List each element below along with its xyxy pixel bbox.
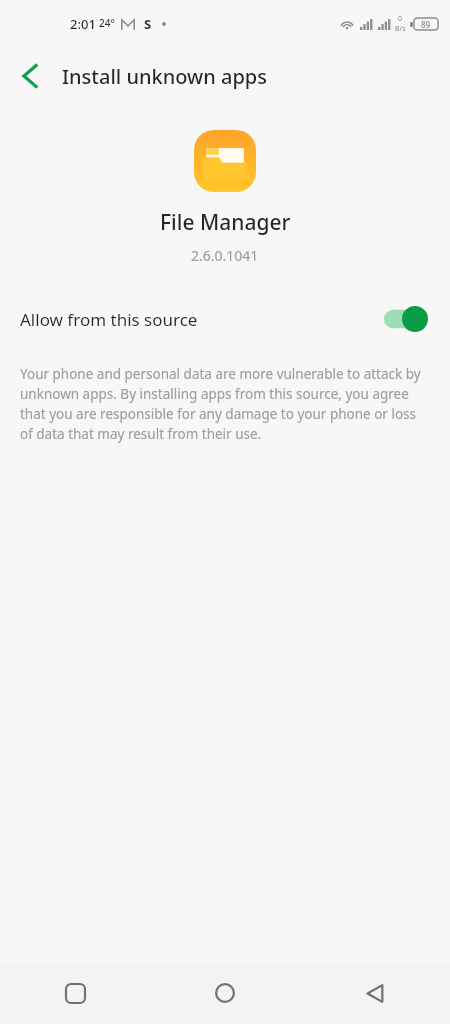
staticText: Install unknown apps	[62, 63, 267, 90]
staticText: 2:01	[70, 15, 96, 33]
staticText: File Manager	[160, 208, 291, 237]
staticText: S	[144, 15, 152, 33]
staticText: 0	[398, 14, 403, 24]
button[interactable]: Home	[150, 962, 300, 1024]
button[interactable]: Recent apps	[0, 962, 150, 1024]
button[interactable]: Back	[6, 52, 54, 100]
staticText: Allow from this source	[20, 308, 384, 331]
staticText: 89	[421, 19, 431, 30]
button[interactable]: Allow from this source	[0, 295, 450, 343]
button[interactable]: Back	[300, 962, 450, 1024]
staticText: 24°	[99, 16, 115, 30]
staticText: B/s	[395, 24, 406, 34]
staticText: Your phone and personal data are more vu…	[20, 365, 426, 443]
other: Allow from this source	[384, 306, 428, 332]
staticText: 2.6.0.1041	[191, 246, 259, 265]
